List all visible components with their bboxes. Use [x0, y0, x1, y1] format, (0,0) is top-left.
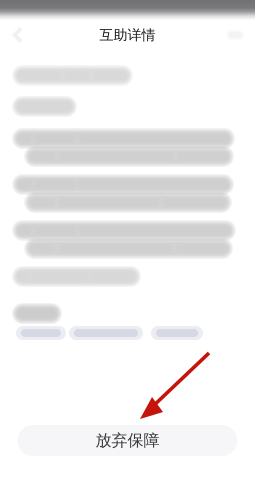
button[interactable]: More options — [215, 18, 255, 52]
button[interactable] — [16, 326, 66, 340]
staticText: 互助详情 — [99, 26, 155, 44]
button[interactable] — [151, 326, 203, 340]
staticText: 放弃保障 — [95, 430, 159, 451]
button[interactable]: 放弃保障 — [17, 425, 237, 456]
button[interactable] — [69, 326, 143, 340]
button[interactable]: Back — [0, 18, 40, 52]
